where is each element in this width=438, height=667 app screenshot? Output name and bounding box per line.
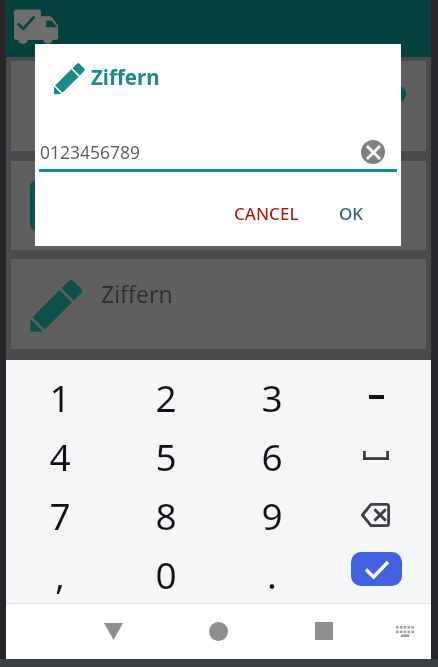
- button[interactable]: Delivery app: [10, 8, 60, 48]
- staticText: 7: [49, 490, 71, 540]
- button[interactable]: Clear text: [361, 140, 385, 164]
- button[interactable]: 2: [113, 367, 219, 426]
- other: Backspace: [357, 497, 393, 533]
- staticText: Ziffern: [91, 63, 160, 91]
- button[interactable]: Backspace: [325, 485, 431, 544]
- other: Space: [361, 440, 391, 470]
- staticText: 8: [155, 490, 177, 540]
- button[interactable]: 6: [219, 426, 325, 485]
- button[interactable]: CANCEL: [224, 192, 309, 235]
- button[interactable]: [11, 61, 426, 151]
- button[interactable]: OK: [329, 192, 374, 235]
- staticText: Ziffern: [101, 278, 173, 309]
- button[interactable]: ,: [6, 544, 113, 603]
- staticText: ,: [55, 549, 65, 599]
- button[interactable]: .: [219, 544, 325, 603]
- button[interactable]: Space: [325, 426, 431, 485]
- staticText: 0: [155, 549, 177, 599]
- button[interactable]: 9: [219, 485, 325, 544]
- button[interactable]: 5: [113, 426, 219, 485]
- button[interactable]: 4: [6, 426, 113, 485]
- other: Enter: [351, 552, 402, 586]
- button[interactable]: Enter: [325, 544, 431, 603]
- staticText: 1: [49, 372, 71, 422]
- button[interactable]: Recent apps: [298, 603, 350, 659]
- button[interactable]: 0: [113, 544, 219, 603]
- button[interactable]: Back: [87, 603, 139, 659]
- other: Minus: [361, 382, 391, 412]
- button[interactable]: [11, 161, 426, 250]
- button[interactable]: Switch keyboard: [382, 603, 428, 659]
- staticText: 9: [261, 490, 283, 540]
- staticText: 0123456789: [40, 140, 141, 164]
- button[interactable]: Ziffern: [11, 259, 426, 349]
- staticText: OK: [339, 202, 364, 225]
- staticText: 5: [155, 431, 177, 481]
- button[interactable]: 7: [6, 485, 113, 544]
- staticText: 2: [155, 372, 177, 422]
- button[interactable]: 3: [219, 367, 325, 426]
- button[interactable]: Home: [192, 603, 244, 659]
- button[interactable]: 8: [113, 485, 219, 544]
- button[interactable]: Minus: [325, 367, 431, 426]
- staticText: .: [267, 549, 277, 599]
- button[interactable]: 1: [6, 367, 113, 426]
- staticText: CANCEL: [234, 202, 299, 225]
- staticText: 3: [261, 372, 283, 422]
- staticText: 6: [261, 431, 283, 481]
- staticText: 4: [49, 431, 71, 481]
